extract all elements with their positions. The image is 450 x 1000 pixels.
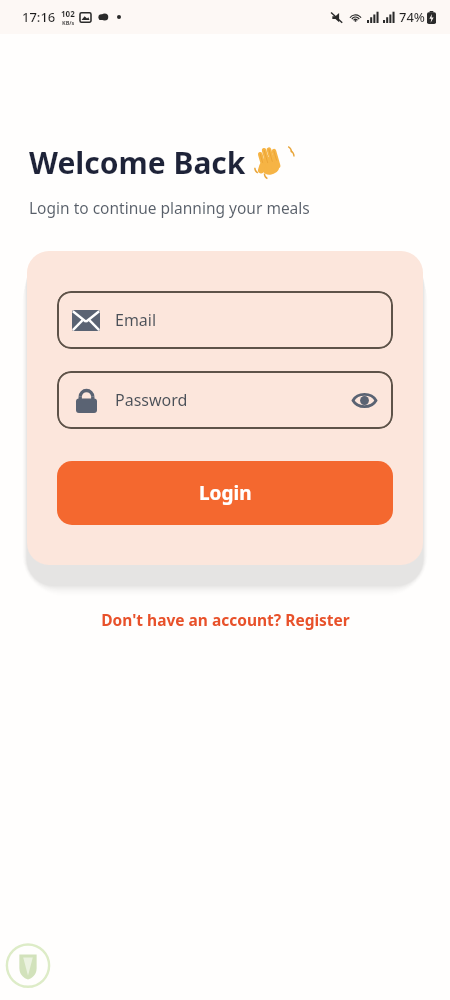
button[interactable]: Email <box>57 291 393 349</box>
staticText: Email <box>115 309 157 331</box>
staticText: Login to continue planning your meals <box>29 197 310 218</box>
staticText: Password <box>115 389 188 411</box>
staticText: 17:16 <box>22 8 56 26</box>
staticText: Welcome Back <box>29 142 246 183</box>
staticText: Don't have an account? Register <box>101 609 350 630</box>
button[interactable]: Show password <box>349 385 379 415</box>
staticText: 74% <box>399 8 425 26</box>
button[interactable]: Password <box>57 371 393 429</box>
staticText: 102 <box>61 8 75 19</box>
button[interactable]: Login <box>57 461 393 525</box>
staticText: Login <box>199 480 252 506</box>
button[interactable]: Don't have an account? Register <box>0 609 450 630</box>
staticText: KB/s <box>62 19 75 26</box>
